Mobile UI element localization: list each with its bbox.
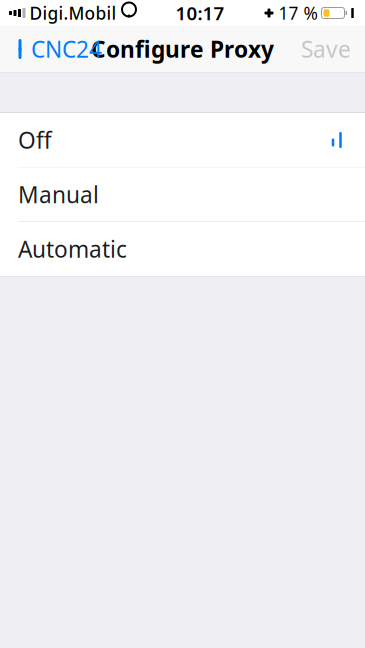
button[interactable]: Off (0, 113, 365, 167)
button[interactable]: Manual (0, 167, 365, 221)
staticText: Automatic (18, 234, 127, 264)
staticText: Digi.Mobil (29, 1, 116, 24)
staticText: Off (18, 125, 52, 155)
button[interactable]: CNC24 (6, 26, 110, 72)
button[interactable]: Automatic (0, 222, 365, 276)
staticText: 10:17 (175, 1, 224, 25)
staticText: Save (301, 34, 351, 64)
staticText: Configure Proxy (91, 34, 274, 64)
button[interactable]: Save (293, 26, 359, 72)
staticText: Manual (18, 179, 99, 209)
staticText: CNC24 (31, 34, 102, 64)
staticText: 17 % (278, 1, 317, 24)
